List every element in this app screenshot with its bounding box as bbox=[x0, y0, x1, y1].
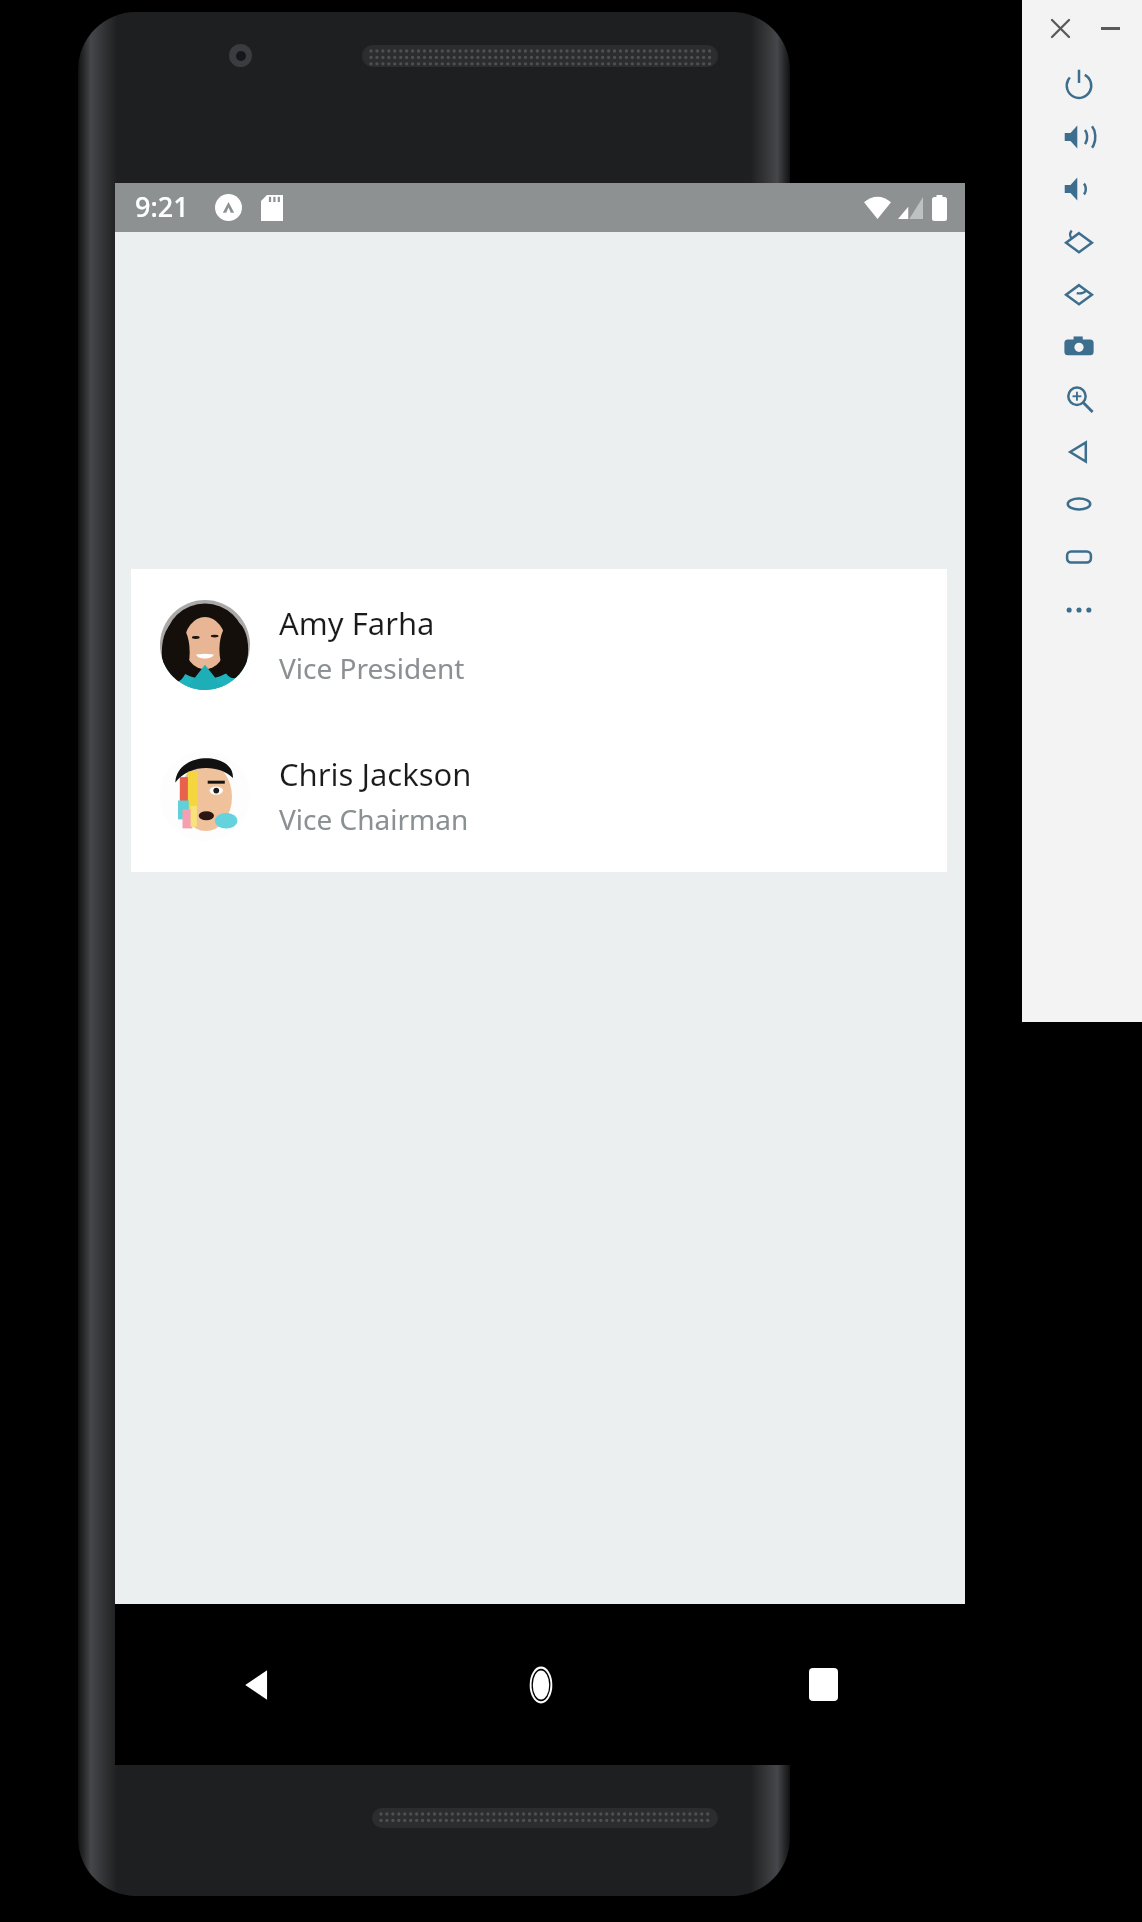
button[interactable]: Zoom bbox=[1052, 372, 1106, 426]
staticText: 9:21 bbox=[135, 188, 189, 225]
button[interactable]: Volume up bbox=[1052, 110, 1106, 164]
button[interactable]: Back bbox=[1052, 425, 1106, 479]
button[interactable]: Screenshot bbox=[1052, 320, 1106, 374]
staticText: Amy Farha bbox=[279, 602, 435, 644]
button[interactable]: Volume down bbox=[1052, 162, 1106, 216]
staticText: Vice Chairman bbox=[279, 800, 469, 838]
button[interactable]: Home bbox=[1052, 477, 1106, 531]
button[interactable]: Home bbox=[399, 1604, 682, 1765]
button[interactable]: Overview bbox=[1052, 530, 1106, 584]
button[interactable]: More bbox=[1052, 583, 1106, 637]
button[interactable]: Rotate right bbox=[1052, 267, 1106, 321]
button[interactable]: Amy Farha bbox=[131, 569, 947, 720]
button[interactable]: Chris Jackson bbox=[131, 720, 947, 871]
button[interactable]: Close bbox=[1042, 10, 1078, 46]
button[interactable]: Recent apps bbox=[682, 1604, 965, 1765]
button[interactable]: Minimize bbox=[1092, 10, 1128, 46]
button[interactable]: Power bbox=[1052, 58, 1106, 112]
staticText: Vice President bbox=[279, 649, 465, 687]
button[interactable]: Back bbox=[115, 1604, 399, 1765]
button[interactable]: Rotate left bbox=[1052, 215, 1106, 269]
staticText: Chris Jackson bbox=[279, 753, 472, 795]
